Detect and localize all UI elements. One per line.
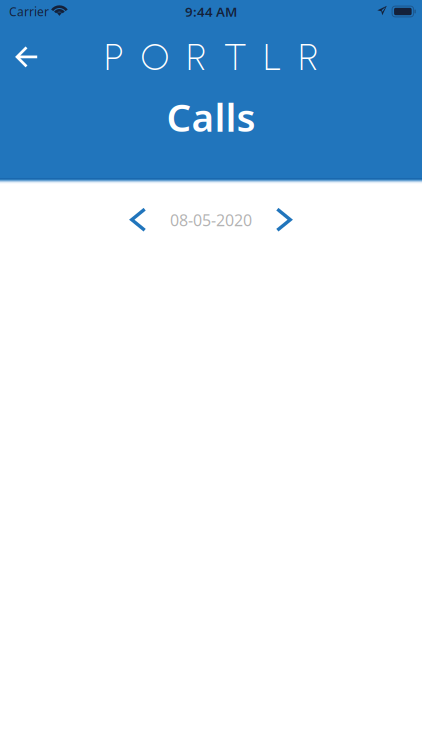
staticText: PORTLR	[104, 35, 318, 79]
button[interactable]: Back	[3, 33, 51, 81]
staticText: 9:44 AM	[185, 3, 237, 20]
button[interactable]: Next day	[265, 200, 303, 240]
staticText: 08-05-2020	[170, 209, 252, 231]
staticText: Carrier	[9, 3, 49, 19]
staticText: Calls	[166, 91, 255, 142]
button[interactable]: Previous day	[119, 200, 157, 240]
